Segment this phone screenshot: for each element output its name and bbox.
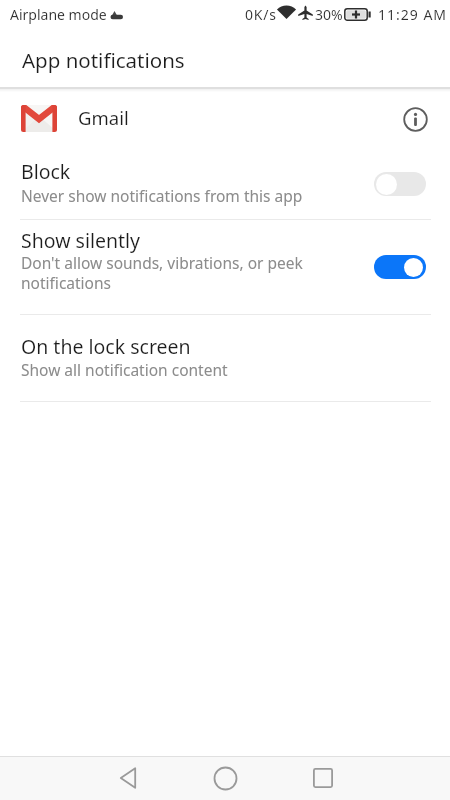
button[interactable] bbox=[374, 255, 426, 279]
button[interactable] bbox=[105, 756, 153, 800]
button[interactable] bbox=[0, 315, 450, 401]
button[interactable] bbox=[0, 89, 450, 150]
button[interactable] bbox=[0, 220, 450, 314]
staticText: 30% bbox=[315, 5, 343, 24]
staticText: Show silently bbox=[21, 227, 141, 254]
staticText: On the lock screen bbox=[21, 333, 191, 360]
staticText: Airplane mode bbox=[10, 5, 107, 24]
button[interactable] bbox=[299, 756, 347, 800]
button[interactable] bbox=[201, 756, 249, 800]
staticText: Gmail bbox=[78, 105, 129, 130]
staticText: Don't allow sounds, vibrations, or peek … bbox=[21, 252, 303, 294]
staticText: 0K/s bbox=[245, 5, 277, 24]
staticText: 11:29 AM bbox=[378, 5, 448, 24]
staticText: Block bbox=[21, 158, 71, 185]
staticText: App notifications bbox=[22, 46, 185, 74]
button[interactable] bbox=[391, 95, 439, 143]
button[interactable] bbox=[0, 150, 450, 220]
button[interactable] bbox=[374, 172, 426, 196]
staticText: Never show notifications from this app bbox=[21, 185, 303, 206]
staticText: Show all notification content bbox=[21, 359, 228, 380]
